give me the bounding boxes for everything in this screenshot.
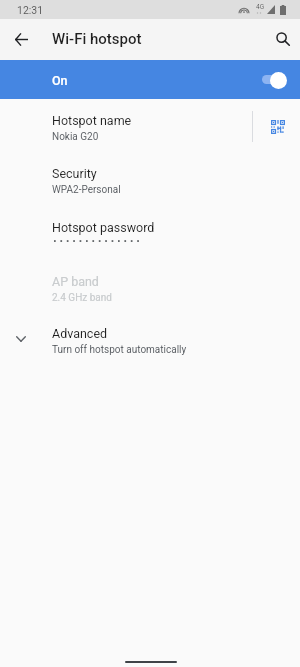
staticText: On <box>52 73 68 88</box>
button[interactable]: Hotspot password <box>0 208 300 242</box>
staticText: 12:31 <box>17 4 44 16</box>
staticText: Hotspot name <box>52 113 132 128</box>
staticText: Advanced <box>52 326 108 341</box>
staticText: Hotspot password <box>52 220 155 235</box>
button[interactable]: Hotspot name <box>0 101 300 135</box>
staticText: Turn off hotspot automatically <box>52 344 187 356</box>
staticText: Wi-Fi hotspot <box>52 30 142 48</box>
staticText: 2.4 GHz band <box>52 292 112 304</box>
button[interactable]: Share hotspot QR code <box>255 105 300 149</box>
button[interactable]: Advanced <box>0 314 300 348</box>
button[interactable]: On <box>0 60 300 99</box>
button[interactable]: Back <box>6 24 36 54</box>
button[interactable]: Search <box>268 24 298 54</box>
staticText: Nokia G20 <box>52 131 99 143</box>
staticText: WPA2-Personal <box>52 184 121 196</box>
staticText: AP band <box>52 274 99 289</box>
button[interactable]: Security <box>0 154 300 188</box>
staticText: Security <box>52 166 97 181</box>
button[interactable]: AP band <box>0 262 300 296</box>
staticText: 4G <box>256 3 265 11</box>
